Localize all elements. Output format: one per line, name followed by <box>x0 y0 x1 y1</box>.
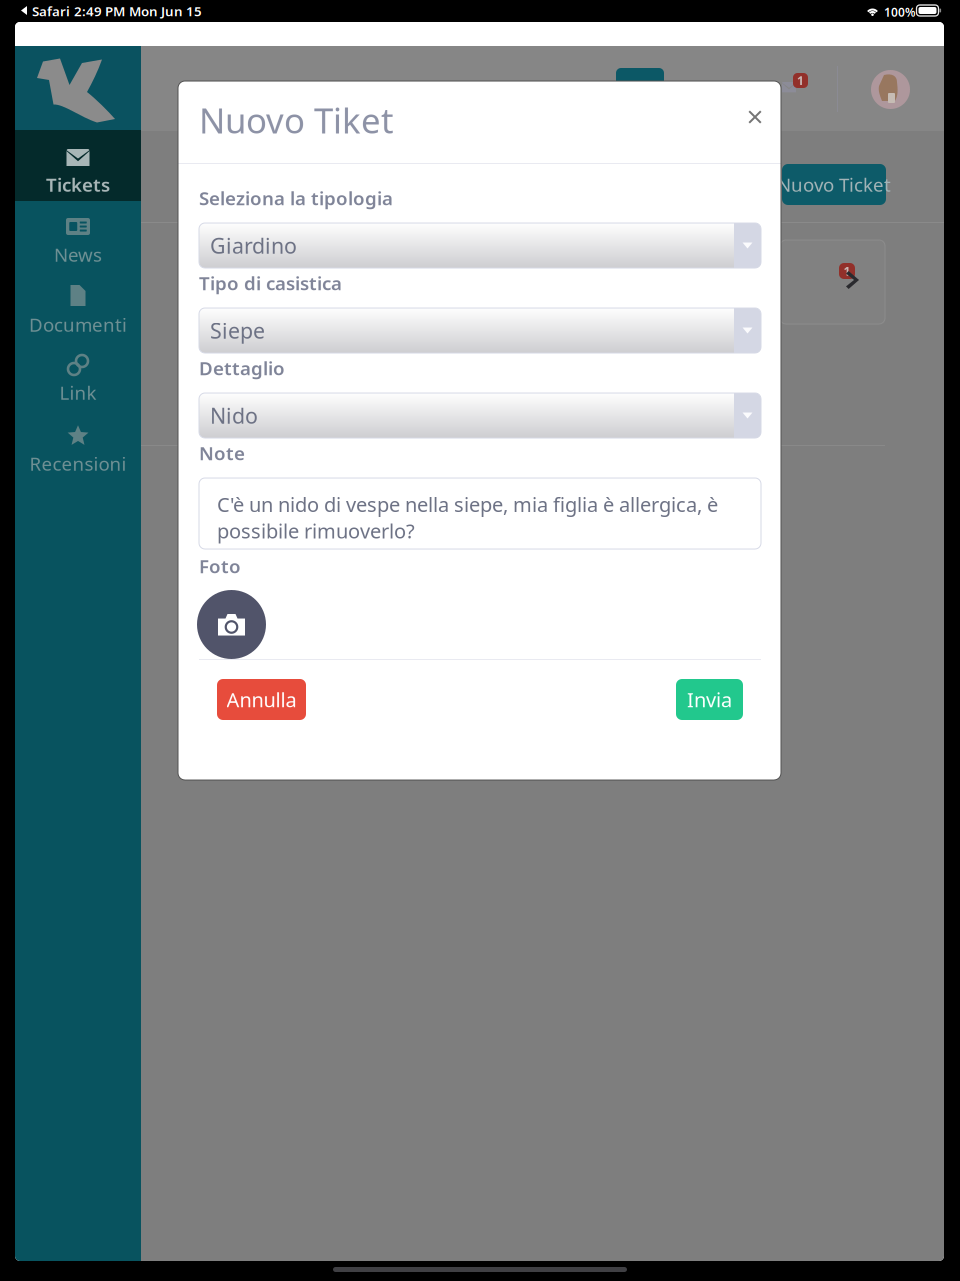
button[interactable]: Nido <box>199 393 761 438</box>
button[interactable]: Giardino <box>199 223 761 268</box>
button[interactable]: Link <box>15 341 141 411</box>
button[interactable]: News <box>15 201 141 271</box>
staticText: Safari <box>32 2 70 20</box>
button[interactable]: Annulla <box>217 679 306 720</box>
staticText: Siepe <box>210 316 265 345</box>
button[interactable]: Scatta foto <box>197 590 266 659</box>
button[interactable]: 1 <box>780 240 885 324</box>
staticText: Mon Jun 15 <box>129 2 202 20</box>
staticText: Tipo di casistica <box>199 271 342 295</box>
staticText: C'è un nido di vespe nella siepe, mia fi… <box>217 491 718 544</box>
button[interactable]: Chiudi <box>740 102 770 132</box>
button[interactable]: Nuovo Ticket <box>782 164 886 205</box>
staticText: Nuovo Tiket <box>199 97 394 143</box>
button[interactable]: Cerca <box>616 68 664 102</box>
staticText: Seleziona la tipologia <box>199 186 393 210</box>
button[interactable]: Messaggi <box>782 73 814 103</box>
staticText: 2:49 PM <box>74 2 125 20</box>
staticText: 100% <box>884 4 916 20</box>
button[interactable]: Tickets <box>15 130 141 201</box>
button[interactable]: Documenti <box>15 271 141 341</box>
staticText: Recensioni <box>29 451 126 476</box>
staticText: Link <box>59 380 96 405</box>
staticText: News <box>54 242 102 267</box>
staticText: Annulla <box>226 686 296 713</box>
staticText: 1 <box>843 263 850 279</box>
staticText: Foto <box>199 554 241 578</box>
button[interactable]: Recensioni <box>15 411 141 481</box>
staticText: Documenti <box>29 312 127 337</box>
staticText: Giardino <box>210 231 297 260</box>
staticText: Note <box>199 441 245 465</box>
button[interactable]: Siepe <box>199 308 761 353</box>
staticText: Dettaglio <box>199 356 285 380</box>
button[interactable]: Invia <box>676 679 743 720</box>
staticText: Tickets <box>46 172 110 197</box>
staticText: Invia <box>687 686 732 713</box>
staticText: Nido <box>210 401 258 430</box>
button[interactable]: Profilo <box>871 70 910 109</box>
staticText: 1 <box>797 72 804 88</box>
staticText: Nuovo Ticket <box>777 172 891 197</box>
